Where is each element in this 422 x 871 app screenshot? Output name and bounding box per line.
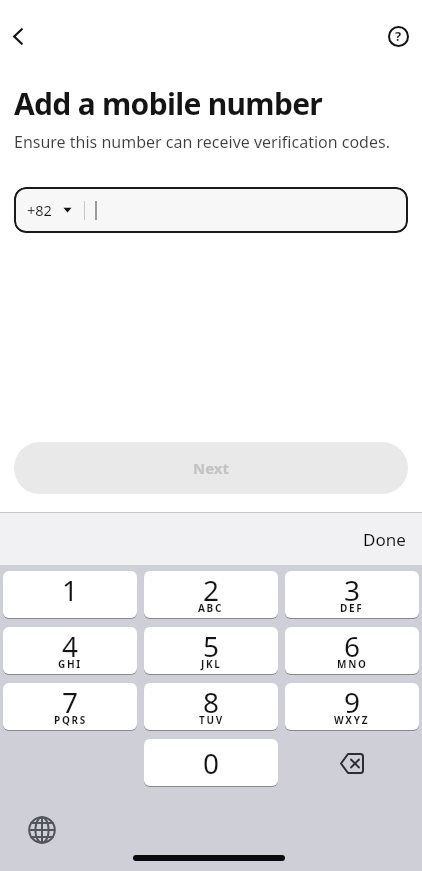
staticText: TUV xyxy=(199,713,224,727)
staticText: WXYZ xyxy=(334,713,370,727)
button[interactable]: 1 xyxy=(3,571,137,619)
button[interactable]: Done xyxy=(363,528,406,551)
button[interactable]: 3 xyxy=(285,571,419,619)
staticText: 9 xyxy=(344,683,361,713)
button[interactable]: Next xyxy=(14,442,408,494)
staticText: 0 xyxy=(203,744,220,782)
staticText: MNO xyxy=(337,657,368,671)
staticText: GHI xyxy=(58,657,82,671)
staticText: PQRS xyxy=(54,713,87,727)
button[interactable] xyxy=(4,22,32,50)
button[interactable]: ? xyxy=(384,22,412,50)
button[interactable]: 9 xyxy=(285,683,419,731)
staticText: Done xyxy=(363,528,406,551)
button[interactable] xyxy=(24,812,60,848)
button[interactable]: 6 xyxy=(285,627,419,675)
button[interactable]: 0 xyxy=(144,739,278,787)
staticText: 2 xyxy=(203,571,220,601)
staticText: 1 xyxy=(62,571,79,601)
button[interactable]: +82 xyxy=(14,187,408,233)
button[interactable]: 7 xyxy=(3,683,137,731)
staticText: ABC xyxy=(198,601,224,615)
staticText: DEF xyxy=(340,601,364,615)
staticText: JKL xyxy=(201,657,222,671)
button[interactable]: 4 xyxy=(3,627,137,675)
staticText: Next xyxy=(193,458,230,478)
button[interactable]: 2 xyxy=(144,571,278,619)
button[interactable] xyxy=(285,739,419,787)
staticText: 8 xyxy=(203,683,220,713)
staticText: Ensure this number can receive verificat… xyxy=(14,131,390,153)
staticText: 7 xyxy=(62,683,79,713)
staticText: +82 xyxy=(27,200,52,220)
staticText: 3 xyxy=(344,571,361,601)
button[interactable]: 5 xyxy=(144,627,278,675)
staticText: ? xyxy=(395,27,402,45)
button[interactable]: 8 xyxy=(144,683,278,731)
staticText: Add a mobile number xyxy=(14,83,323,124)
staticText: 5 xyxy=(203,627,220,657)
staticText: 4 xyxy=(62,627,79,657)
staticText: 6 xyxy=(344,627,361,657)
